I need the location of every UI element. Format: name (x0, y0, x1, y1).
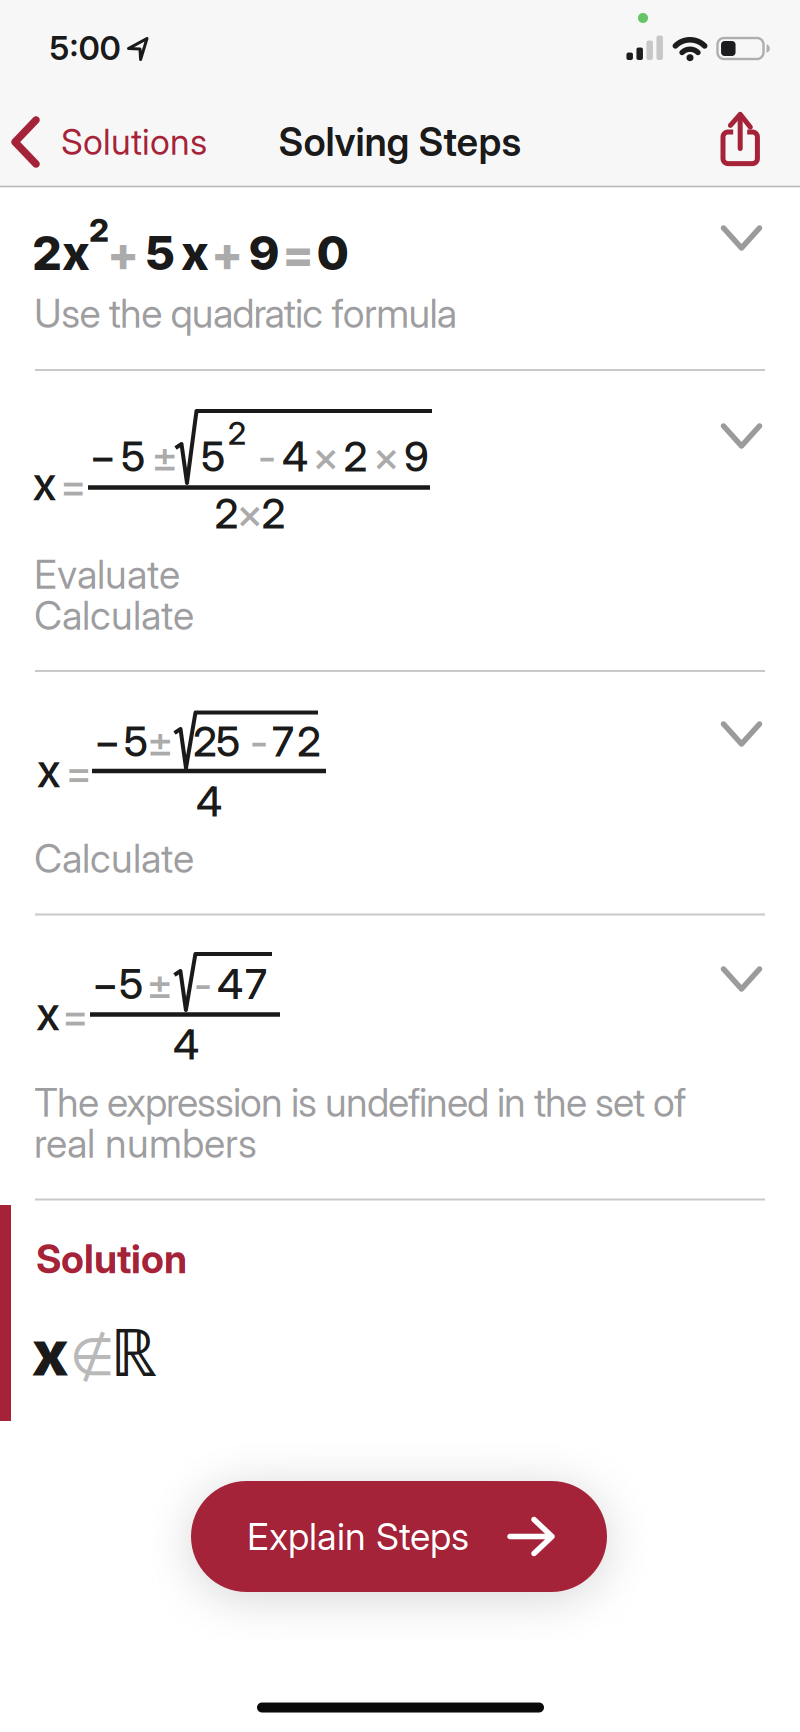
staticText: x (36, 744, 61, 798)
staticText: x (181, 225, 209, 281)
staticText: - (250, 716, 268, 767)
staticText: 5 (144, 225, 175, 281)
staticText: 2 (89, 211, 109, 249)
staticText: 2 (343, 431, 367, 482)
staticText: The expression is undefined in the set o… (34, 1079, 686, 1126)
staticText: 5:00 (49, 28, 120, 68)
staticText: x (35, 987, 60, 1041)
staticText: 4 (217, 959, 243, 1009)
staticText: x (32, 457, 57, 511)
staticText: 2 (193, 716, 217, 767)
staticText: = (62, 990, 88, 1041)
button[interactable]: 2 (0, 187, 800, 371)
staticText: = (65, 747, 91, 797)
staticText: 2 (227, 414, 246, 452)
staticText: − (89, 431, 115, 482)
staticText: 7 (245, 959, 267, 1009)
staticText: + (211, 226, 243, 282)
staticText: 4 (282, 431, 308, 482)
staticText: x (31, 1314, 68, 1391)
staticText: 4 (196, 776, 222, 827)
staticText: × (373, 431, 399, 482)
staticText: 9 (404, 431, 429, 482)
staticText: - (194, 959, 212, 1009)
staticText: = (60, 460, 86, 511)
staticText: Calculate (34, 835, 194, 882)
staticText: 7 (272, 716, 294, 767)
staticText: - (258, 431, 276, 482)
staticText: 2 (214, 488, 238, 539)
staticText: 4 (173, 1019, 199, 1070)
staticText: − (92, 959, 118, 1009)
staticText: × (236, 488, 262, 539)
staticText: ± (147, 716, 173, 767)
staticText: 2 (261, 488, 285, 539)
staticText: 2 (297, 716, 321, 767)
button[interactable]: x (0, 915, 800, 1200)
staticText: real numbers (34, 1120, 257, 1167)
staticText: Use the quadratic formula (34, 290, 457, 337)
button[interactable]: Back (0, 104, 280, 180)
staticText: Solving Steps (278, 119, 521, 165)
staticText: Calculate (34, 592, 194, 639)
staticText: 5 (121, 431, 145, 482)
staticText: ℝ (110, 1306, 157, 1395)
staticText: × (312, 431, 338, 482)
staticText: 5 (124, 716, 148, 767)
button[interactable]: Share (702, 102, 778, 182)
staticText: ± (151, 431, 177, 482)
staticText: 0 (316, 225, 349, 281)
staticText: ∉ (69, 1327, 114, 1387)
staticText: 2 (32, 225, 62, 281)
staticText: ± (146, 959, 172, 1009)
staticText: + (107, 226, 139, 282)
button[interactable]: Explain Steps (191, 1481, 607, 1592)
staticText: Evaluate (34, 551, 180, 598)
button[interactable]: x (0, 371, 800, 672)
staticText: 9 (248, 225, 279, 281)
staticText: 5 (201, 431, 225, 482)
staticText: 5 (216, 716, 240, 767)
staticText: = (282, 226, 314, 282)
button[interactable]: x (0, 672, 800, 915)
staticText: Solutions (61, 121, 207, 163)
staticText: − (94, 716, 120, 767)
staticText: 5 (119, 959, 143, 1009)
staticText: x (62, 225, 90, 281)
staticText: Explain Steps (247, 1514, 469, 1559)
staticText: Solution (36, 1235, 187, 1283)
